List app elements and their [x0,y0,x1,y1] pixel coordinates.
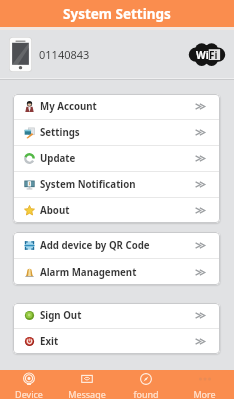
staticText: Add device by QR Code [40,239,150,252]
button[interactable]: Update [13,146,220,171]
button[interactable]: My Account [13,94,220,119]
button[interactable]: Message [58,370,116,399]
staticText: Update [40,152,76,165]
staticText: Alarm Management [40,266,137,279]
staticText: Fi [209,48,218,62]
staticText: Settings [40,126,80,139]
button[interactable]: About [13,198,220,223]
button[interactable]: Add device by QR Code [13,232,220,258]
staticText: Device [15,388,43,399]
other: WiFi [188,43,226,66]
staticText: System Notification [40,178,136,191]
staticText: About [40,204,70,217]
button[interactable]: Exit [13,329,220,354]
button[interactable]: Settings [13,120,220,145]
button[interactable]: Sign Out [13,303,220,328]
button[interactable]: found [116,370,175,399]
staticText: System Settings [63,5,171,23]
staticText: More [193,388,216,399]
button[interactable]: System Notification [13,172,220,197]
button[interactable]: More [175,370,234,399]
button[interactable]: Device [0,370,58,399]
button[interactable]: Alarm Management [13,259,220,285]
staticText: Wi [196,48,209,62]
staticText: Message [68,388,106,399]
staticText: found [133,388,159,399]
staticText: Exit [40,335,59,348]
staticText: My Account [40,100,97,113]
staticText: Sign Out [40,309,82,322]
staticText: 01140843 [39,47,90,62]
